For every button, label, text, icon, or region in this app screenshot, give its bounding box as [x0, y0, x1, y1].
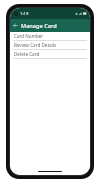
staticText: 1:19: [20, 11, 29, 17]
button[interactable]: Back: [10, 19, 21, 32]
button[interactable]: Review Card Details: [10, 41, 90, 49]
staticText: Manage Card: [21, 22, 57, 30]
button[interactable]: Card Number: [10, 32, 90, 40]
staticText: Review Card Details: [14, 42, 57, 48]
staticText: Card Number: [14, 33, 44, 39]
staticText: Delete Card: [14, 51, 40, 57]
button[interactable]: Delete Card: [10, 50, 90, 58]
